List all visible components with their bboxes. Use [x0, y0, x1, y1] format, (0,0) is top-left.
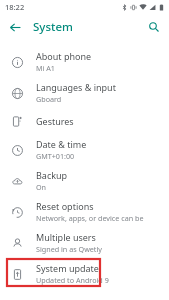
- staticText: System update: [36, 262, 99, 274]
- button[interactable]: Back: [4, 16, 26, 38]
- staticText: Multiple users: [36, 231, 96, 243]
- button[interactable]: Multiple users: [0, 227, 169, 258]
- button[interactable]: Reset options: [0, 196, 169, 227]
- staticText: On: [36, 182, 47, 192]
- staticText: Updated to Android 9: [36, 275, 109, 285]
- staticText: About phone: [36, 50, 92, 62]
- staticText: Network, apps, or device can be reset: [36, 213, 161, 223]
- button[interactable]: Languages & input: [0, 77, 169, 108]
- button[interactable]: About phone: [0, 46, 169, 77]
- staticText: Gboard: [36, 94, 62, 104]
- staticText: GMT+01:00: [36, 151, 75, 161]
- staticText: Date & time: [36, 138, 87, 150]
- staticText: Gestures: [36, 115, 74, 127]
- button[interactable]: Search: [144, 17, 164, 37]
- staticText: Signed in as Qwetly: [36, 244, 102, 254]
- staticText: 18:22: [5, 2, 25, 12]
- button[interactable]: Gestures: [0, 108, 169, 134]
- staticText: System: [33, 19, 73, 35]
- button[interactable]: Date & time: [0, 134, 169, 165]
- staticText: Languages & input: [36, 81, 116, 93]
- staticText: Reset options: [36, 200, 94, 212]
- button[interactable]: System update: [0, 258, 169, 289]
- staticText: Backup: [36, 169, 68, 181]
- button[interactable]: Backup: [0, 165, 169, 196]
- staticText: Mi A1: [36, 63, 55, 73]
